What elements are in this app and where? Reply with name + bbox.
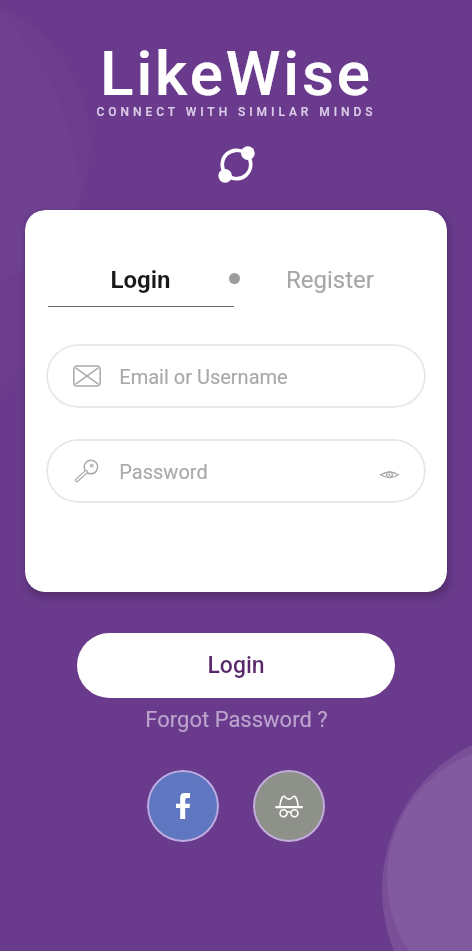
button[interactable]: Email or Username	[46, 344, 426, 408]
button[interactable]: Login	[77, 633, 395, 698]
button[interactable]: Continue as guest	[253, 770, 325, 842]
button[interactable]: Login	[86, 266, 194, 303]
staticText: Login	[110, 266, 171, 294]
staticText: Register	[286, 266, 374, 294]
button[interactable]: Register	[275, 266, 385, 303]
button[interactable]: Forgot Password ?	[139, 701, 334, 739]
staticText: Forgot Password ?	[145, 707, 328, 733]
staticText: LikeWise	[100, 37, 373, 110]
button[interactable]: Sign in with Facebook	[147, 770, 219, 842]
staticText: CONNECT WITH SIMILAR MINDS	[96, 105, 377, 119]
button[interactable]: Password	[46, 439, 426, 503]
staticText: Email or Username	[119, 365, 288, 388]
staticText: Login	[207, 652, 265, 679]
staticText: Password	[119, 460, 208, 483]
